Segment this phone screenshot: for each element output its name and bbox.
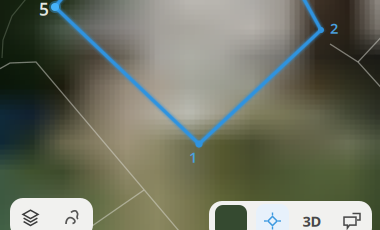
staticText: 3D (302, 211, 321, 230)
staticText: 2 (330, 18, 338, 38)
button[interactable]: Basemap (209, 201, 253, 230)
button[interactable]: Recenter (253, 201, 292, 230)
button[interactable]: Map layers (10, 198, 51, 230)
button[interactable]: Comments (332, 201, 372, 230)
staticText: 5 (39, 0, 49, 20)
button[interactable]: Measure (51, 198, 93, 230)
staticText: 1 (189, 147, 197, 167)
button[interactable]: 3D (292, 201, 332, 230)
